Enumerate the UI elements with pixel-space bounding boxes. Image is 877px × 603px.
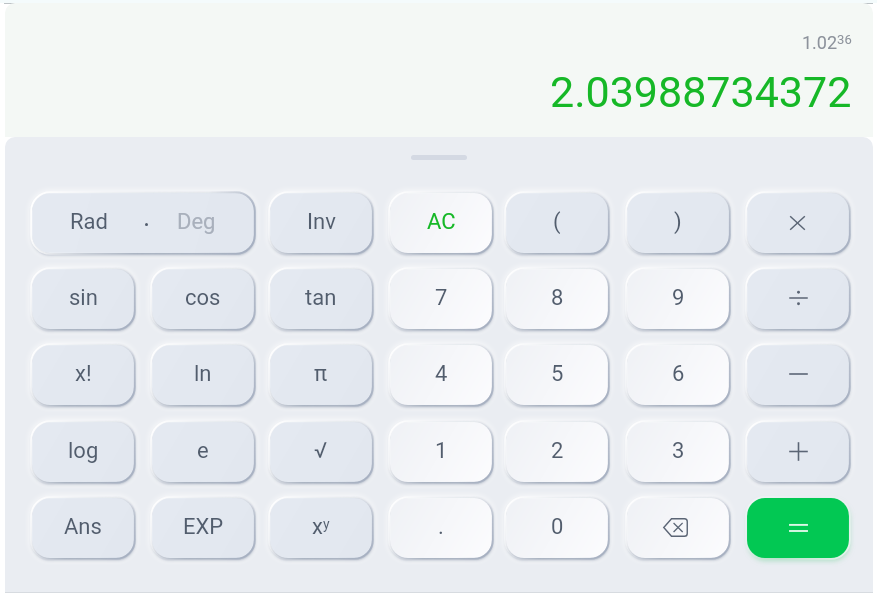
staticText: 1 bbox=[435, 438, 448, 464]
staticText: 8 bbox=[551, 285, 564, 311]
button[interactable]: . bbox=[390, 498, 492, 558]
button[interactable]: 4 bbox=[390, 345, 492, 405]
button[interactable]: AC bbox=[390, 193, 492, 253]
button[interactable]: e bbox=[152, 422, 254, 482]
button[interactable]: 1 bbox=[390, 422, 492, 482]
button[interactable]: Delete bbox=[627, 498, 729, 558]
button[interactable]: 8 bbox=[506, 269, 608, 329]
staticText: sin bbox=[69, 285, 98, 311]
staticText: 5 bbox=[551, 361, 564, 387]
button[interactable]: ( bbox=[506, 193, 608, 253]
button[interactable]: π bbox=[270, 345, 372, 405]
button[interactable]: 0 bbox=[506, 498, 608, 558]
button[interactable]: ) bbox=[627, 193, 729, 253]
staticText: 2 bbox=[551, 438, 564, 464]
staticText: ln bbox=[194, 361, 212, 387]
button[interactable]: 5 bbox=[506, 345, 608, 405]
button[interactable]: √ bbox=[270, 422, 372, 482]
staticText: ) bbox=[674, 209, 682, 235]
button[interactable]: 6 bbox=[627, 345, 729, 405]
staticText: xy bbox=[312, 514, 330, 540]
staticText: Inv bbox=[307, 209, 336, 235]
button[interactable]: EXP bbox=[152, 498, 254, 558]
staticText: 2.03988734372 bbox=[550, 67, 852, 117]
button[interactable]: Equals bbox=[747, 498, 849, 558]
staticText: Ans bbox=[64, 514, 102, 540]
staticText: AC bbox=[427, 209, 456, 235]
staticText: log bbox=[68, 438, 99, 464]
button[interactable]: log bbox=[32, 422, 134, 482]
staticText: 1.0236 bbox=[802, 32, 852, 54]
staticText: 9 bbox=[672, 285, 685, 311]
button[interactable]: Ans bbox=[32, 498, 134, 558]
button[interactable]: Add bbox=[747, 422, 849, 482]
button[interactable]: 2 bbox=[506, 422, 608, 482]
button[interactable]: cos bbox=[152, 269, 254, 329]
button[interactable]: 3 bbox=[627, 422, 729, 482]
staticText: 7 bbox=[435, 285, 448, 311]
staticText: tan bbox=[305, 285, 337, 311]
staticText: 3 bbox=[672, 438, 685, 464]
button[interactable]: Inv bbox=[270, 193, 372, 253]
staticText: x! bbox=[75, 361, 92, 387]
staticText: 0 bbox=[551, 514, 564, 540]
button[interactable]: Multiply bbox=[747, 193, 849, 253]
staticText: π bbox=[314, 361, 328, 387]
staticText: 6 bbox=[672, 361, 685, 387]
button[interactable]: sin bbox=[32, 269, 134, 329]
staticText: 4 bbox=[435, 361, 448, 387]
button[interactable]: 9 bbox=[627, 269, 729, 329]
staticText: EXP bbox=[183, 514, 224, 540]
button[interactable]: Divide bbox=[747, 269, 849, 329]
staticText: cos bbox=[185, 285, 221, 311]
button[interactable]: x to the power of y bbox=[270, 498, 372, 558]
button[interactable]: Subtract bbox=[747, 345, 849, 405]
staticText: Rad bbox=[70, 209, 108, 235]
button[interactable]: x! bbox=[32, 345, 134, 405]
button[interactable]: Toggle radians or degrees bbox=[32, 193, 254, 253]
button[interactable]: 7 bbox=[390, 269, 492, 329]
staticText: √ bbox=[314, 438, 328, 464]
button[interactable]: tan bbox=[270, 269, 372, 329]
staticText: Deg bbox=[177, 209, 216, 235]
button[interactable]: ln bbox=[152, 345, 254, 405]
staticText: e bbox=[197, 438, 209, 464]
staticText: ( bbox=[553, 209, 561, 235]
staticText: . bbox=[438, 514, 444, 540]
